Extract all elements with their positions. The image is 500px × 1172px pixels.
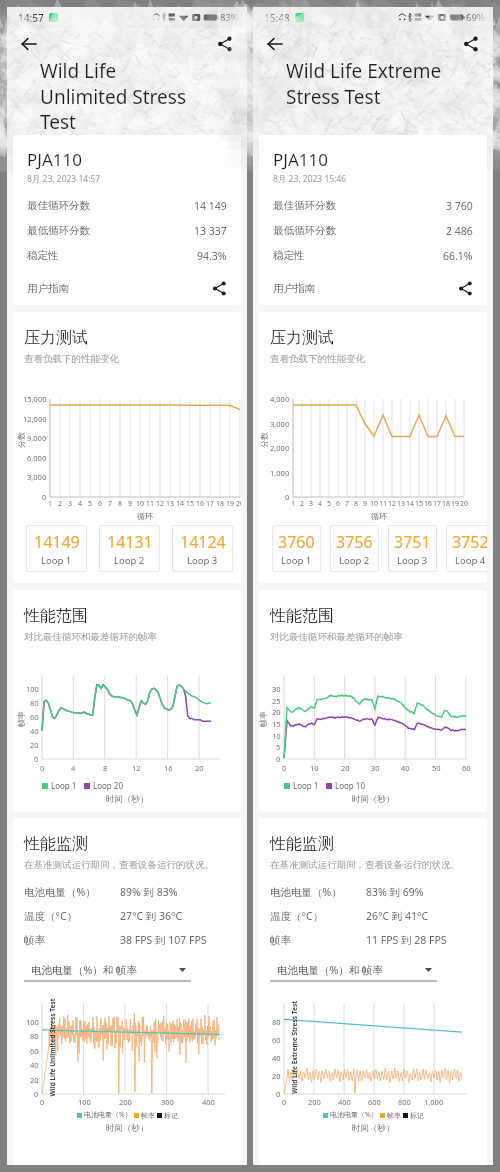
- button[interactable]: 用户指南: [273, 277, 473, 299]
- staticText: 30: [272, 684, 281, 694]
- staticText: 69%: [466, 11, 485, 24]
- staticText: 14131: [107, 531, 153, 553]
- staticText: Wild Life Unlimited Stress Test: [47, 998, 56, 1096]
- staticText: 60: [30, 712, 39, 722]
- staticText: PJA110: [273, 148, 328, 171]
- staticText: 38 FPS 到 107 FPS: [120, 933, 207, 947]
- staticText: 稳定性: [273, 249, 305, 262]
- staticText: 20: [30, 740, 39, 750]
- staticText: 94.3%: [197, 249, 227, 263]
- button[interactable]: 用户指南: [27, 277, 227, 299]
- staticText: 17: [206, 499, 215, 509]
- staticText: 帧率: [387, 1111, 401, 1120]
- staticText: 帧率: [270, 934, 291, 947]
- staticText: 1,000: [424, 1097, 444, 1107]
- staticText: 100: [26, 684, 39, 694]
- staticText: Loop 3: [187, 554, 218, 567]
- staticText: 时间（秒）: [106, 794, 149, 805]
- button[interactable]: 3756: [330, 525, 379, 572]
- staticText: 14 149: [194, 199, 227, 213]
- staticText: 10: [136, 499, 145, 509]
- staticText: Loop 1: [41, 554, 72, 567]
- staticText: 循环: [137, 511, 153, 521]
- staticText: 0: [40, 763, 45, 773]
- staticText: 查看负载下的性能变化: [24, 353, 119, 365]
- staticText: 电池电量（%）: [24, 885, 96, 899]
- staticText: 89% 到 83%: [120, 885, 178, 899]
- staticText: 100: [26, 1017, 39, 1027]
- staticText: 帧率: [16, 711, 26, 727]
- staticText: 14:57: [18, 11, 44, 25]
- button[interactable]: Back: [264, 33, 286, 55]
- staticText: Loop 10: [335, 780, 366, 791]
- button[interactable]: 3751: [388, 525, 437, 572]
- staticText: 性能监测: [24, 834, 88, 854]
- staticText: 16: [196, 499, 205, 509]
- staticText: 性能监测: [270, 834, 334, 854]
- staticText: 20: [236, 499, 241, 509]
- staticText: 在基准测试运行期间，查看设备运行的状况。: [270, 859, 460, 871]
- staticText: 10: [272, 731, 281, 741]
- staticText: 最低循环分数: [273, 224, 336, 237]
- staticText: 80: [30, 1031, 39, 1041]
- staticText: 83% 到 69%: [366, 885, 424, 899]
- staticText: 查看负载下的性能变化: [270, 353, 365, 365]
- staticText: 9,000: [27, 433, 47, 443]
- staticText: 时间（秒）: [352, 1123, 395, 1134]
- staticText: 12: [132, 763, 141, 773]
- staticText: 40: [272, 1053, 281, 1063]
- staticText: 12,000: [23, 414, 47, 424]
- staticText: 1,000: [270, 468, 290, 478]
- staticText: 14: [406, 499, 415, 509]
- staticText: 最佳循环分数: [273, 199, 336, 212]
- staticText: 12: [156, 499, 165, 509]
- staticText: 8: [354, 499, 359, 509]
- button[interactable]: 14131: [99, 525, 160, 572]
- staticText: 压力测试: [270, 328, 334, 348]
- staticText: Wild Life Unlimited Stress Test: [40, 58, 186, 134]
- staticText: 分数: [259, 432, 269, 448]
- staticText: 0: [34, 754, 39, 764]
- staticText: 10: [310, 763, 319, 773]
- staticText: 0: [282, 1097, 287, 1107]
- staticText: 在基准测试运行期间，查看设备运行的状况。: [24, 859, 214, 871]
- staticText: 帧率: [141, 1111, 155, 1120]
- staticText: 13: [397, 499, 406, 509]
- staticText: 0: [40, 1097, 45, 1107]
- button[interactable]: Share: [460, 33, 482, 55]
- button[interactable]: 3760: [272, 525, 321, 572]
- button[interactable]: 3752: [446, 525, 487, 572]
- staticText: 200: [308, 1097, 321, 1107]
- staticText: 4,000: [270, 394, 290, 404]
- button[interactable]: Share: [214, 33, 236, 55]
- staticText: 3760: [278, 531, 315, 553]
- staticText: PJA110: [27, 148, 82, 171]
- staticText: 4: [78, 499, 83, 509]
- staticText: 80: [272, 1017, 281, 1027]
- staticText: 50: [432, 763, 441, 773]
- button[interactable]: 14124: [172, 525, 233, 572]
- staticText: Loop 2: [339, 554, 370, 567]
- button[interactable]: 电池电量（%）和 帧率: [24, 957, 186, 983]
- staticText: 200: [119, 1097, 132, 1107]
- staticText: 循环: [371, 511, 387, 521]
- staticText: 14: [176, 499, 185, 509]
- staticText: 9: [363, 499, 368, 509]
- staticText: 对比最佳循环和最差循环的帧率: [270, 631, 403, 643]
- button[interactable]: 电池电量（%）和 帧率: [270, 957, 432, 983]
- staticText: 0: [34, 1089, 39, 1099]
- staticText: 16: [424, 499, 433, 509]
- button[interactable]: Back: [18, 33, 40, 55]
- staticText: 0: [285, 492, 290, 502]
- button[interactable]: 14149: [26, 525, 87, 572]
- staticText: 时间（秒）: [106, 1123, 149, 1134]
- staticText: 20: [341, 763, 350, 773]
- staticText: 20: [195, 763, 204, 773]
- staticText: 800: [398, 1097, 411, 1107]
- staticText: 60: [272, 1035, 281, 1045]
- staticText: 10: [370, 499, 379, 509]
- staticText: 2 486: [446, 224, 473, 238]
- staticText: 0: [282, 763, 287, 773]
- staticText: 30: [371, 763, 380, 773]
- staticText: 2,000: [270, 443, 290, 453]
